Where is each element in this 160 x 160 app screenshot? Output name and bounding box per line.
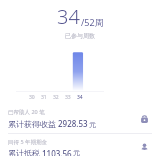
staticText: 累计获得收益 bbox=[8, 119, 56, 129]
other: 抵税 bbox=[138, 141, 150, 153]
staticText: 已帮助人 20 笔 bbox=[8, 108, 45, 116]
staticText: 32 bbox=[53, 94, 59, 101]
staticText: 1103.56 bbox=[42, 148, 72, 156]
staticText: 2928.53 bbox=[58, 118, 88, 129]
staticText: 30 bbox=[29, 94, 35, 101]
button[interactable]: 目得 5 年期期金 bbox=[0, 134, 160, 160]
staticText: 33 bbox=[65, 94, 71, 101]
staticText: 34 bbox=[57, 3, 80, 30]
staticText: /52周 bbox=[81, 16, 104, 28]
staticText: 元 bbox=[89, 120, 96, 129]
staticText: 元 bbox=[73, 148, 80, 156]
staticText: 累计抵税 bbox=[8, 148, 40, 156]
staticText: 31 bbox=[41, 94, 47, 101]
button[interactable]: 30 bbox=[0, 45, 160, 101]
button[interactable]: 34 bbox=[53, 2, 108, 31]
button[interactable]: 已帮助人 20 笔 bbox=[0, 104, 160, 133]
staticText: 目得 5 年期期金 bbox=[8, 138, 48, 146]
other: 收益 bbox=[138, 113, 150, 125]
staticText: 34 bbox=[77, 94, 83, 101]
staticText: 已参与周数 bbox=[65, 32, 95, 40]
